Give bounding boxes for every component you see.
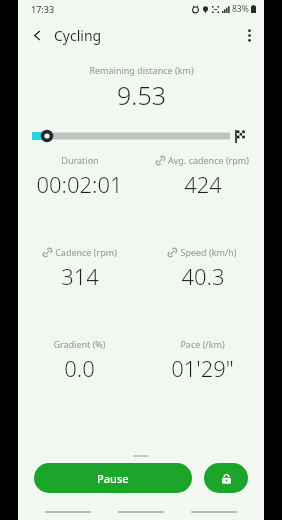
button[interactable]: Cadence (rpm) bbox=[18, 246, 141, 291]
staticText: Remaining distance (km) bbox=[89, 64, 194, 76]
staticText: Avg. cadence (rpm) bbox=[168, 154, 249, 166]
staticText: 83% bbox=[232, 3, 249, 15]
staticText: Duration bbox=[61, 154, 99, 166]
staticText: 424 bbox=[184, 169, 222, 199]
staticText: Pace (/km) bbox=[180, 338, 225, 350]
staticText: 314 bbox=[61, 261, 99, 291]
button[interactable]: More options bbox=[241, 22, 258, 49]
staticText: Cycling bbox=[54, 26, 102, 45]
button[interactable]: Distance progress bbox=[32, 128, 250, 144]
button[interactable]: Pause bbox=[34, 463, 192, 493]
staticText: 00:02:01 bbox=[36, 169, 123, 199]
staticText: Speed (km/h) bbox=[180, 246, 237, 258]
staticText: Gradient (%) bbox=[53, 338, 106, 350]
staticText: 40.3 bbox=[181, 261, 225, 291]
button[interactable]: Navigation bbox=[118, 506, 164, 517]
button[interactable]: Remaining distance (km) bbox=[18, 64, 264, 112]
staticText: Pause bbox=[97, 471, 129, 486]
button[interactable]: Duration bbox=[18, 154, 141, 199]
button[interactable]: Speed (km/h) bbox=[141, 246, 264, 291]
button[interactable]: Avg. cadence (rpm) bbox=[141, 154, 264, 199]
button[interactable]: Lock screen bbox=[204, 463, 248, 493]
button[interactable]: Back bbox=[26, 24, 49, 47]
button[interactable]: Navigation bbox=[191, 506, 237, 517]
staticText: Cadence (rpm) bbox=[55, 246, 117, 258]
staticText: 9.53 bbox=[117, 78, 166, 112]
button[interactable]: Pace (/km) bbox=[141, 338, 264, 383]
button[interactable]: Gradient (%) bbox=[18, 338, 141, 383]
button[interactable]: Navigation bbox=[45, 506, 91, 517]
staticText: 01'29" bbox=[171, 353, 234, 383]
staticText: 17:33 bbox=[31, 3, 55, 15]
staticText: 0.0 bbox=[64, 353, 95, 383]
